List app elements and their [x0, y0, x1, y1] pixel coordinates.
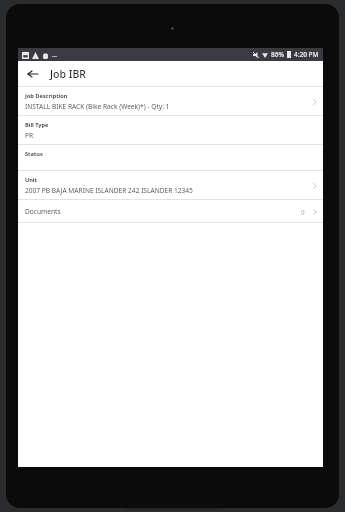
staticText: Documents: [25, 207, 301, 216]
staticText: 2007 PB BAJA MARINE ISLANDER 242 ISLANDE…: [25, 186, 193, 195]
staticText: PR: [25, 131, 34, 140]
button[interactable]: Bill Type: [18, 116, 323, 145]
staticText: Bill Type: [25, 121, 49, 129]
staticText: ...: [52, 51, 58, 59]
staticText: 0: [301, 208, 305, 216]
staticText: 4:20 PM: [294, 50, 319, 59]
staticText: Job IBR: [50, 67, 86, 81]
staticText: Job Description: [25, 92, 68, 100]
staticText: 86%: [271, 50, 284, 59]
button[interactable]: Job Description: [18, 87, 323, 116]
button[interactable]: Back: [24, 65, 42, 83]
staticText: Status: [25, 150, 43, 158]
button[interactable]: Status: [18, 145, 323, 171]
staticText: Unit: [25, 176, 37, 184]
button[interactable]: Unit: [18, 171, 323, 200]
staticText: INSTALL BIKE RACK (Bike Rack (Week)*) - …: [25, 102, 170, 111]
button[interactable]: Documents: [18, 200, 323, 223]
